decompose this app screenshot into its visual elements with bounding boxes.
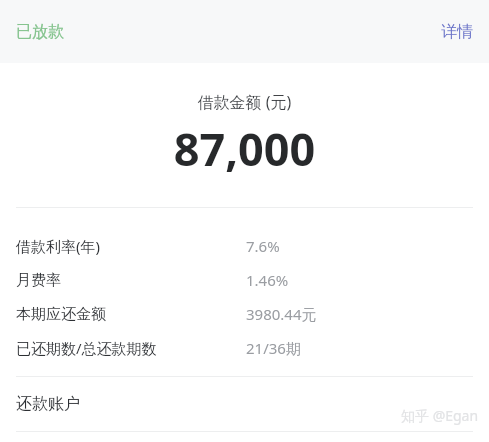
staticText: 还款账户 <box>16 394 80 414</box>
staticText: 21/36期 <box>246 338 301 358</box>
button[interactable]: 已放款 <box>0 14 74 50</box>
button[interactable]: 借款利率(年) <box>0 229 489 263</box>
staticText: 详情 <box>441 22 473 42</box>
button[interactable]: 月费率 <box>0 263 489 297</box>
staticText: 已放款 <box>16 22 64 42</box>
staticText: 借款金额 (元) <box>0 91 489 113</box>
staticText: 已还期数/总还款期数 <box>16 338 157 358</box>
staticText: 7.6% <box>246 236 280 256</box>
staticText: 借款利率(年) <box>16 236 101 256</box>
staticText: 知乎 @Egan <box>401 406 479 425</box>
staticText: 87,000 <box>0 118 489 179</box>
button[interactable]: 已还期数/总还款期数 <box>0 331 489 365</box>
staticText: 1.46% <box>246 270 289 290</box>
button[interactable]: 还款账户 <box>0 377 489 431</box>
staticText: 3980.44元 <box>246 304 317 324</box>
button[interactable]: 本期应还金额 <box>0 297 489 331</box>
staticText: 月费率 <box>16 271 61 290</box>
staticText: 本期应还金额 <box>16 305 106 324</box>
button[interactable]: 详情 <box>431 14 489 50</box>
